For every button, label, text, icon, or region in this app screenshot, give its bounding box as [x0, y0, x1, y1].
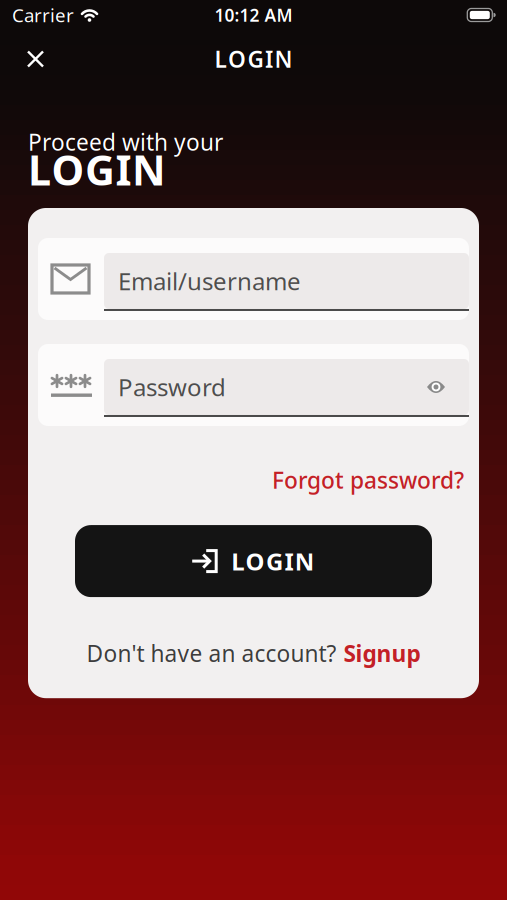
- staticText: I: [284, 545, 293, 577]
- staticText: Don't have an account?: [86, 638, 336, 668]
- staticText: N: [295, 545, 315, 577]
- button[interactable]: Close: [0, 30, 44, 87]
- staticText: N: [132, 142, 166, 197]
- button[interactable]: L: [75, 525, 432, 597]
- staticText: Signup: [343, 638, 420, 668]
- button[interactable]: Signup: [343, 638, 420, 668]
- button[interactable]: Password: [38, 344, 469, 426]
- staticText: Carrier: [12, 3, 74, 27]
- staticText: I: [115, 142, 131, 197]
- staticText: O: [228, 44, 246, 74]
- staticText: L: [28, 142, 51, 197]
- button[interactable]: Show password: [427, 380, 455, 393]
- staticText: G: [247, 44, 263, 74]
- staticText: N: [274, 44, 292, 74]
- staticText: I: [265, 44, 273, 74]
- staticText: L: [231, 545, 244, 577]
- staticText: G: [85, 142, 115, 197]
- staticText: O: [51, 142, 84, 197]
- button[interactable]: Email/username: [38, 238, 469, 320]
- staticText: Password: [118, 371, 226, 403]
- button[interactable]: Forgot password?: [272, 465, 464, 495]
- staticText: Email/username: [118, 265, 301, 297]
- staticText: L: [214, 44, 226, 74]
- staticText: 10:12 AM: [214, 3, 292, 26]
- staticText: O: [246, 545, 265, 577]
- staticText: Proceed with your: [28, 127, 223, 157]
- staticText: G: [266, 545, 283, 577]
- staticText: Forgot password?: [272, 465, 464, 495]
